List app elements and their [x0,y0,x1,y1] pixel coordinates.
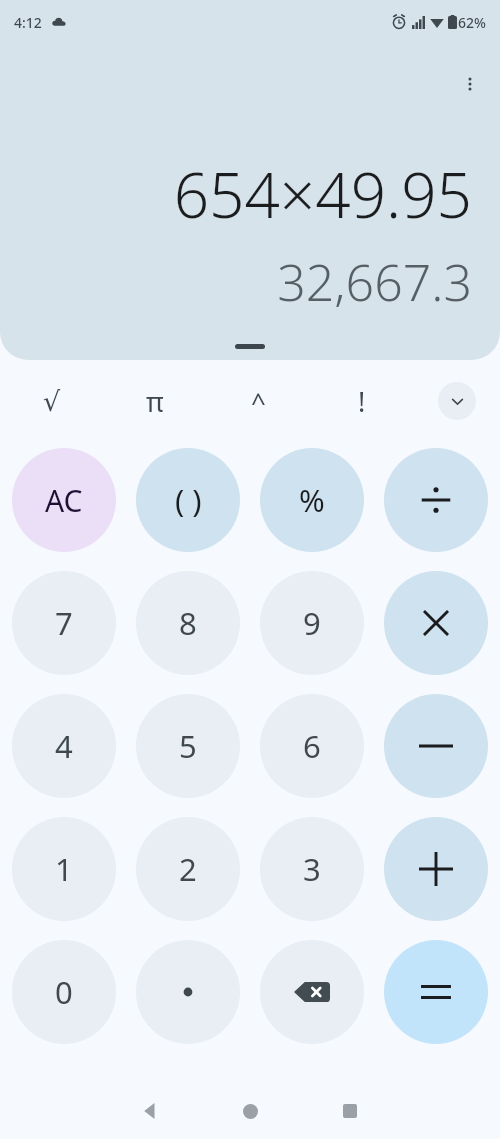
button[interactable]: Equals [384,940,488,1044]
button[interactable]: Back [100,1083,200,1139]
button[interactable]: Delete [260,940,364,1044]
button[interactable]: 0 [12,940,116,1044]
staticText: % [299,479,325,521]
button[interactable]: Subtract [384,694,488,798]
staticText: ! [358,383,366,420]
button[interactable]: 4 [12,694,116,798]
staticText: 4:12 [14,13,42,32]
button[interactable]: 9 [260,571,364,675]
button[interactable]: π [103,370,206,432]
button[interactable]: √ [0,370,103,432]
button[interactable]: 3 [260,817,364,921]
button[interactable]: Recent apps [300,1083,400,1139]
staticText: 654×49.95 [28,152,472,236]
button[interactable]: Expand [438,382,476,420]
staticText: 2 [179,848,197,890]
button[interactable]: 7 [12,571,116,675]
button[interactable]: 8 [136,571,240,675]
button[interactable]: 5 [136,694,240,798]
button[interactable]: ( ) [136,448,240,552]
staticText: 9 [303,602,321,644]
staticText: 5 [179,725,197,767]
button[interactable] [136,940,240,1044]
button[interactable]: 6 [260,694,364,798]
staticText: 32,667.3 [28,248,472,316]
button[interactable]: % [260,448,364,552]
staticText: π [146,383,164,420]
button[interactable]: Home [200,1083,300,1139]
staticText: √ [43,386,61,417]
button[interactable]: Multiply [384,571,488,675]
button[interactable]: 2 [136,817,240,921]
button[interactable]: 1 [12,817,116,921]
staticText: 6 [303,725,321,767]
staticText: ^ [251,384,266,419]
staticText: 0 [55,971,73,1013]
button[interactable]: Divide [384,448,488,552]
staticText: 4 [55,725,73,767]
staticText: 62% [458,13,486,32]
button[interactable]: ! [310,370,414,432]
staticText: 3 [303,848,321,890]
staticText: 1 [55,848,73,890]
button[interactable]: More options [448,62,492,106]
button[interactable]: ^ [206,370,310,432]
staticText: 8 [179,602,197,644]
staticText: AC [45,480,83,521]
staticText: ( ) [175,479,202,521]
button[interactable]: AC [12,448,116,552]
button[interactable]: Add [384,817,488,921]
staticText: 7 [55,602,73,644]
